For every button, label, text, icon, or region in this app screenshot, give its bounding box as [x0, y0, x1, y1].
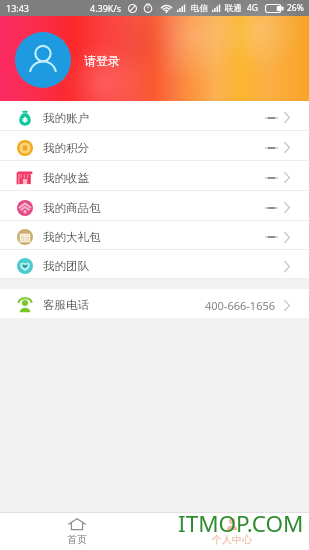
button[interactable]: 个人中心: [154, 513, 309, 550]
staticText: 联通: [225, 3, 242, 14]
staticText: 400-666-1656: [205, 298, 276, 313]
staticText: 首页: [67, 533, 87, 546]
staticText: 4.39K/s: [90, 2, 122, 14]
staticText: 4G: [247, 2, 259, 14]
button[interactable]: 我的积分: [0, 131, 309, 161]
button[interactable]: 我的账户: [0, 101, 309, 131]
button[interactable]: Avatar: [15, 32, 71, 88]
staticText: 我的收益: [43, 171, 89, 185]
staticText: 个人中心: [212, 533, 252, 546]
staticText: 我的大礼包: [43, 230, 101, 244]
button[interactable]: 我的收益: [0, 161, 309, 191]
staticText: 13:43: [6, 2, 30, 14]
staticText: 我的账户: [43, 111, 89, 125]
button[interactable]: 我的商品包: [0, 191, 309, 221]
button[interactable]: 我的大礼包: [0, 221, 309, 250]
staticText: 我的商品包: [43, 201, 101, 215]
staticText: 请登录: [84, 53, 120, 68]
staticText: 客服电话: [43, 298, 89, 312]
staticText: 电信: [191, 3, 208, 14]
staticText: 26%: [287, 2, 304, 14]
staticText: 我的团队: [43, 259, 89, 273]
button[interactable]: 请登录: [84, 52, 120, 68]
staticText: 我的积分: [43, 141, 89, 155]
button[interactable]: 首页: [0, 513, 154, 550]
staticText: ITMOP.COM: [178, 508, 304, 539]
button[interactable]: 我的团队: [0, 250, 309, 279]
button[interactable]: 客服电话: [0, 289, 309, 318]
